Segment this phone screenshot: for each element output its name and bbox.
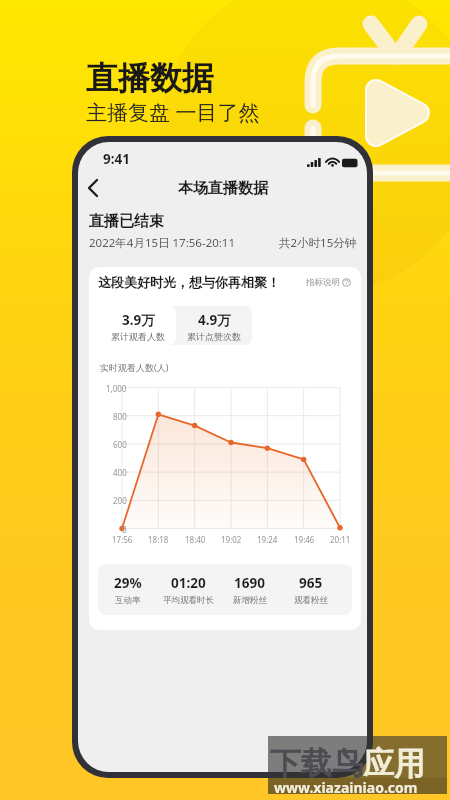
staticText: 17:56 [112, 534, 133, 545]
staticText: 这段美好时光，想与你再相聚！ [98, 274, 280, 290]
button[interactable]: 29% [98, 574, 158, 606]
staticText: 600 [113, 439, 127, 450]
staticText: 3.9万 [122, 311, 155, 329]
button[interactable]: 965 [280, 574, 341, 606]
button[interactable]: 1690 [219, 574, 280, 606]
staticText: 平均观看时长 [163, 595, 214, 606]
staticText: 本场直播数据 [178, 179, 268, 198]
staticText: 18:18 [148, 534, 169, 545]
staticText: 累计观看人数 [111, 331, 165, 342]
staticText: 下载鸟 [270, 744, 363, 783]
staticText: 主播复盘 一目了然 [86, 98, 260, 127]
button[interactable]: Back [78, 172, 109, 204]
staticText: 1,000 [106, 383, 127, 394]
staticText: 9:41 [103, 150, 130, 168]
button[interactable]: 01:20 [158, 574, 219, 606]
staticText: 200 [113, 495, 127, 506]
staticText: 互动率 [115, 595, 141, 606]
staticText: 29% [114, 574, 142, 592]
staticText: 2022年4月15日 17:56-20:11 [89, 235, 236, 251]
button[interactable]: 指标说明 [306, 277, 351, 288]
staticText: 新增粉丝 [233, 595, 267, 606]
staticText: www.xiazainiao.com [274, 778, 418, 797]
staticText: 累计点赞次数 [187, 331, 241, 342]
staticText: 0 [122, 524, 127, 535]
staticText: 965 [299, 574, 323, 592]
staticText: 20:11 [330, 534, 351, 545]
staticText: 共2小时15分钟 [279, 235, 357, 251]
staticText: 01:20 [171, 574, 206, 592]
staticText: 观看粉丝 [294, 595, 328, 606]
staticText: 直播数据 [86, 58, 214, 98]
button[interactable]: 4.9万 [176, 306, 252, 345]
staticText: 4.9万 [198, 311, 231, 329]
staticText: 19:02 [221, 534, 242, 545]
staticText: 18:40 [185, 534, 206, 545]
staticText: 400 [113, 467, 127, 478]
staticText: 应用 [363, 744, 425, 783]
staticText: 800 [113, 411, 127, 422]
staticText: 19:46 [294, 534, 315, 545]
button[interactable]: 3.9万 [100, 306, 176, 345]
staticText: 1690 [234, 574, 265, 592]
staticText: 直播已结束 [89, 212, 164, 231]
staticText: 指标说明 [306, 277, 340, 288]
staticText: 19:24 [257, 534, 278, 545]
staticText: 实时观看人数(人) [100, 361, 169, 373]
